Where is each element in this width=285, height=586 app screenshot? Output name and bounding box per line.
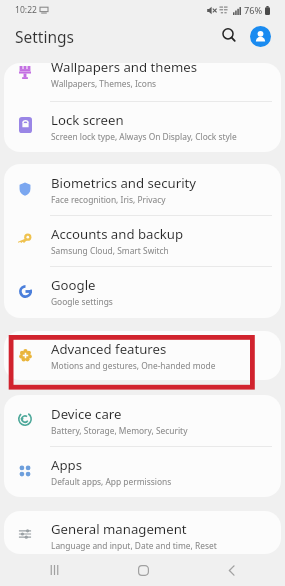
button[interactable]: Account: [250, 26, 271, 47]
button[interactable]: Lock screen: [4, 101, 281, 152]
button[interactable]: Biometrics and security: [4, 164, 281, 215]
staticText: Biometrics and security: [51, 174, 197, 192]
staticText: Google settings: [51, 296, 113, 307]
button[interactable]: Accounts and backup: [4, 215, 281, 266]
staticText: Apps: [51, 456, 82, 474]
button[interactable]: Google: [4, 266, 281, 317]
staticText: Face recognition, Iris, Privacy: [51, 194, 166, 205]
button[interactable]: Home: [108, 554, 178, 586]
staticText: Settings: [15, 26, 74, 47]
button[interactable]: Device care: [4, 395, 281, 446]
staticText: Battery, Storage, Memory, Security: [51, 425, 188, 436]
button[interactable]: General management: [4, 511, 281, 553]
button[interactable]: Recents: [19, 554, 89, 586]
staticText: Google: [51, 276, 96, 294]
button[interactable]: Back: [196, 554, 266, 586]
button[interactable]: Search: [216, 22, 242, 48]
staticText: General management: [51, 520, 187, 538]
staticText: Advanced features: [51, 340, 167, 358]
staticText: Accounts and backup: [51, 225, 184, 243]
staticText: 10:22: [15, 4, 37, 16]
staticText: Device care: [51, 405, 122, 423]
staticText: Wallpapers, Themes, Icons: [51, 78, 157, 89]
staticText: Screen lock type, Always On Display, Clo…: [51, 131, 237, 142]
button[interactable]: Apps: [4, 446, 281, 497]
staticText: Default apps, App permissions: [51, 476, 172, 487]
button[interactable]: Wallpapers and themes: [4, 63, 281, 99]
staticText: Samsung Cloud, Smart Switch: [51, 245, 169, 256]
staticText: Language and input, Date and time, Reset: [51, 540, 217, 551]
staticText: Motions and gestures, One-handed mode: [51, 360, 216, 371]
button[interactable]: Advanced features: [4, 331, 281, 379]
staticText: 76%: [244, 4, 263, 17]
staticText: Wallpapers and themes: [51, 63, 197, 76]
staticText: Lock screen: [51, 111, 124, 129]
